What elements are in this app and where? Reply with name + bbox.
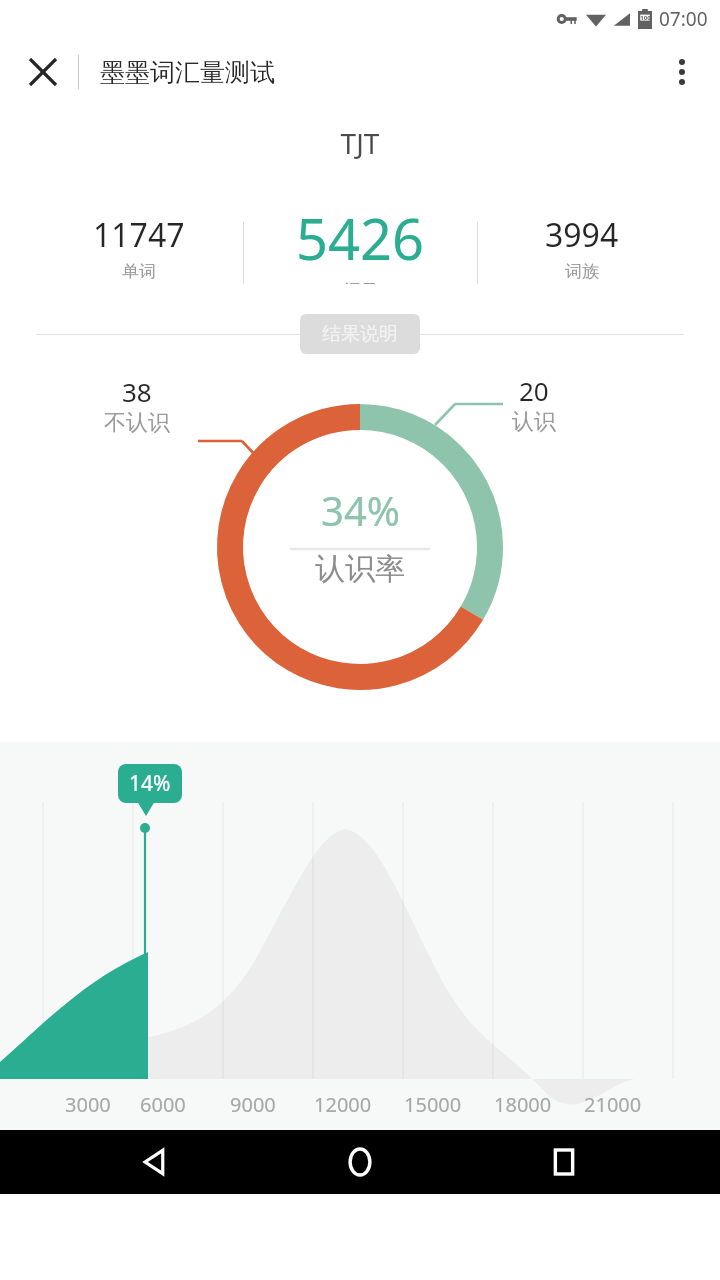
- staticText: 15000: [404, 1091, 462, 1118]
- staticText: 9000: [230, 1091, 276, 1118]
- staticText: 单词: [122, 261, 156, 282]
- button[interactable]: Back: [108, 1130, 204, 1194]
- staticText: 12000: [314, 1091, 372, 1118]
- button[interactable]: Recent apps: [516, 1130, 612, 1194]
- staticText: 3000: [65, 1091, 111, 1118]
- staticText: 6000: [140, 1091, 186, 1118]
- staticText: 词族: [565, 261, 599, 282]
- staticText: 18000: [494, 1091, 552, 1118]
- staticText: 100: [640, 14, 651, 22]
- staticText: 07:00: [659, 6, 708, 32]
- staticText: 21000: [584, 1091, 642, 1118]
- staticText: 墨墨词汇量测试: [100, 57, 275, 88]
- button[interactable]: 3994: [478, 213, 686, 284]
- button[interactable]: Close: [12, 41, 74, 103]
- staticText: 不认识: [104, 409, 170, 437]
- staticText: 认识率: [315, 550, 405, 588]
- staticText: TJT: [0, 124, 720, 162]
- button[interactable]: 14%: [118, 764, 182, 803]
- staticText: 3994: [545, 213, 619, 257]
- button[interactable]: 11747: [34, 213, 243, 284]
- button[interactable]: Home: [312, 1130, 408, 1194]
- button[interactable]: More options: [654, 44, 710, 100]
- staticText: 结果说明: [322, 322, 398, 346]
- staticText: 认识: [512, 408, 556, 436]
- staticText: 11747: [93, 213, 185, 257]
- button[interactable]: 结果说明: [300, 314, 420, 354]
- staticText: 34%: [321, 483, 400, 537]
- staticText: 14%: [129, 769, 171, 798]
- staticText: 20: [519, 373, 549, 408]
- staticText: 词目: [344, 280, 378, 284]
- button[interactable]: 5426: [244, 200, 477, 284]
- staticText: 5426: [296, 200, 425, 276]
- staticText: 38: [122, 374, 152, 409]
